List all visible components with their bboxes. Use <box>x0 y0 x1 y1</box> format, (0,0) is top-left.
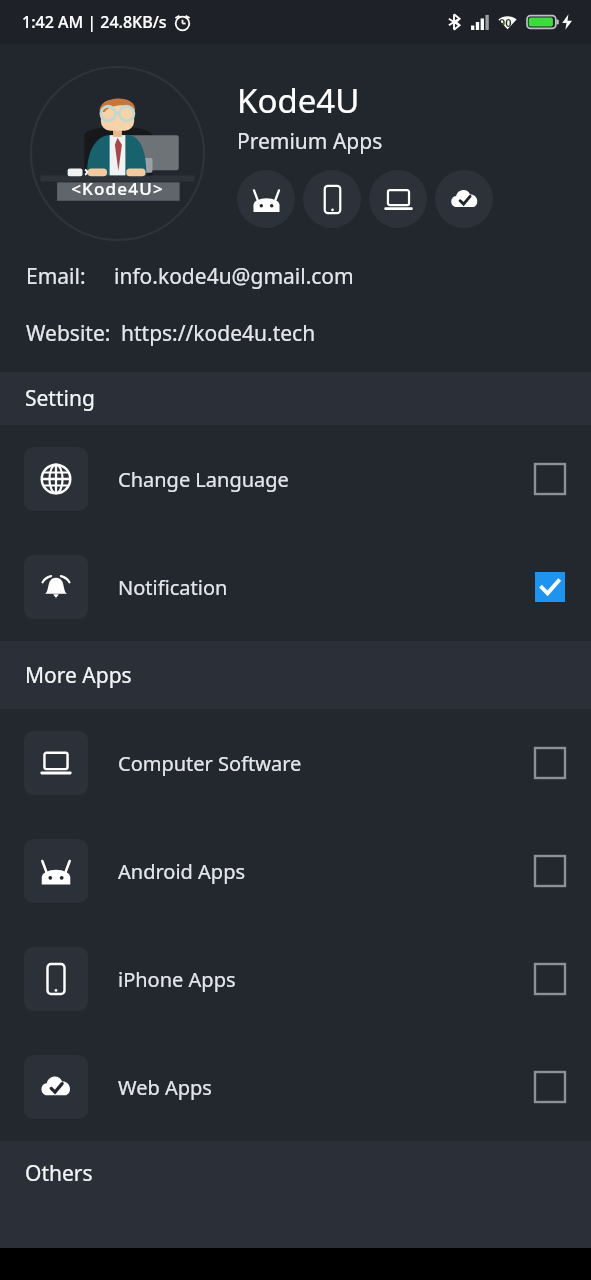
button[interactable]: Android Apps <box>0 817 591 925</box>
button[interactable]: Computer Software disabled <box>533 746 567 780</box>
staticText: Android Apps <box>118 858 533 885</box>
staticText: 1:42 AM | 24.8KB/s <box>22 11 167 33</box>
button[interactable]: https://kode4u.tech <box>121 319 316 348</box>
staticText: Computer Software <box>118 750 533 777</box>
staticText: Others <box>25 1159 93 1188</box>
button[interactable]: iPhone Apps <box>0 925 591 1033</box>
staticText: <Kode4U> <box>71 177 164 200</box>
staticText: iPhone Apps <box>118 966 533 993</box>
button[interactable]: Change Language <box>0 425 591 533</box>
button[interactable]: iPhone Apps disabled <box>533 962 567 996</box>
button[interactable]: info.kode4u@gmail.com <box>114 262 354 291</box>
staticText: Website: <box>26 319 111 348</box>
button[interactable]: Computer Software <box>0 709 591 817</box>
staticText: Kode4U <box>237 78 360 123</box>
button[interactable]: Android apps <box>237 170 295 228</box>
button[interactable]: Notification <box>0 533 591 641</box>
staticText: 90 <box>499 15 512 30</box>
staticText: Change Language <box>118 466 533 493</box>
button[interactable]: Web apps <box>435 170 493 228</box>
button[interactable]: Web Apps <box>0 1033 591 1141</box>
staticText: Web Apps <box>118 1074 533 1101</box>
staticText: Notification <box>118 574 533 601</box>
button[interactable]: Notification enabled <box>533 570 567 604</box>
button[interactable]: Android Apps disabled <box>533 854 567 888</box>
staticText: More Apps <box>25 661 132 690</box>
button[interactable]: Computer software <box>369 170 427 228</box>
button[interactable]: iPhone apps <box>303 170 361 228</box>
button[interactable]: Change Language disabled <box>533 462 567 496</box>
staticText: Email: <box>26 262 86 291</box>
staticText: Premium Apps <box>237 127 383 156</box>
button[interactable]: Web Apps disabled <box>533 1070 567 1104</box>
staticText: Setting <box>25 384 95 413</box>
